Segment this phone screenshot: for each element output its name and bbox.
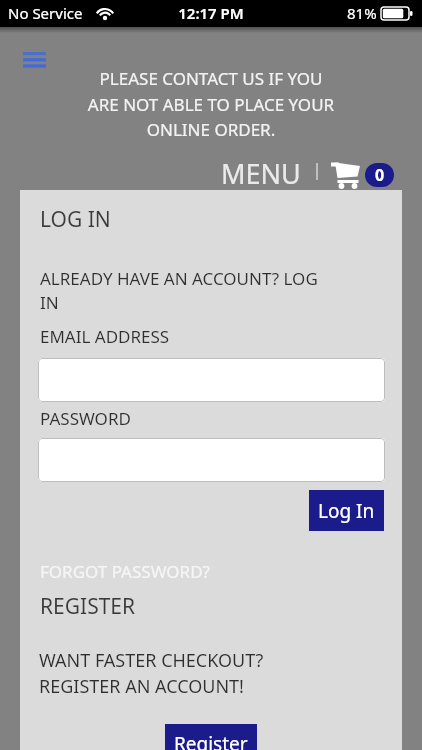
button[interactable] [23,52,46,68]
button[interactable]: Log In [309,490,384,531]
staticText: EMAIL ADDRESS [40,325,170,348]
staticText: 12:17 PM [0,3,422,23]
button[interactable]: FORGOT PASSWORD? [40,560,210,583]
staticText: WANT FASTER CHECKOUT? REGISTER AN ACCOUN… [39,648,264,699]
button[interactable]: Register [165,724,257,750]
button[interactable] [331,161,361,189]
button[interactable]: MENU [221,155,301,192]
staticText: PASSWORD [40,407,131,430]
button[interactable] [38,438,385,482]
staticText: ALREADY HAVE AN ACCOUNT? LOG IN [40,267,318,314]
staticText: 81% [347,3,377,23]
staticText: 0 [375,164,385,186]
staticText: REGISTER [40,592,136,621]
staticText: LOG IN [40,205,111,234]
staticText: Register [174,731,248,750]
staticText: Log In [318,498,375,524]
staticText: No Service [8,3,83,23]
staticText: PLEASE CONTACT US IF YOU ARE NOT ABLE TO… [0,67,422,141]
button[interactable] [38,358,385,402]
